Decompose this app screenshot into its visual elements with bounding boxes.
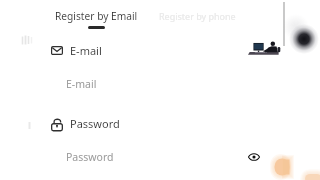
button[interactable]: E-mail [60,71,260,91]
staticText: Register by Email [55,9,138,23]
button[interactable]: E-mail [47,40,111,60]
staticText: E-mail [70,43,102,58]
staticText: Password [66,150,114,164]
button[interactable]: Show password [244,147,264,167]
staticText: E-mail [66,77,97,91]
button[interactable]: Password [60,144,240,164]
button[interactable]: Register by Email [55,9,138,29]
staticText: Password [70,116,120,131]
button[interactable]: Password [47,113,122,135]
button[interactable]: Register by phone [159,10,236,22]
